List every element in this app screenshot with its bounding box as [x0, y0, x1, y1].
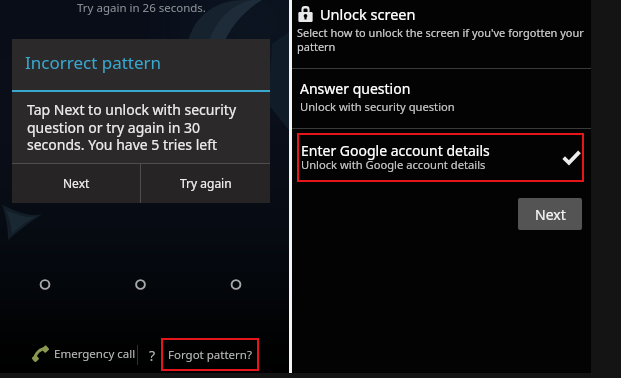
- other: Lock: [297, 6, 314, 23]
- staticText: Try again in 26 seconds.: [0, 0, 286, 16]
- staticText: Unlock with security question: [300, 99, 455, 114]
- staticText: Enter Google account details: [301, 141, 490, 160]
- button[interactable]: Forgot pattern?: [161, 338, 259, 371]
- button[interactable]: Next: [518, 198, 582, 230]
- button[interactable]: Emergency call: [32, 345, 136, 363]
- staticText: Try again: [180, 175, 232, 191]
- staticText: ?: [149, 346, 156, 365]
- staticText: Next: [63, 175, 90, 191]
- button[interactable]: Answer question: [292, 69, 591, 128]
- staticText: Forgot pattern?: [168, 347, 252, 363]
- staticText: Select how to unlock the screen if you'v…: [297, 25, 588, 54]
- button[interactable]: Next: [12, 163, 140, 203]
- staticText: Unlock screen: [320, 4, 416, 24]
- staticText: Next: [535, 205, 566, 224]
- button[interactable]: Enter Google account details: [297, 133, 584, 182]
- staticText: Unlock with Google account details: [301, 157, 486, 172]
- staticText: Emergency call: [54, 346, 136, 362]
- staticText: Incorrect pattern: [25, 51, 162, 74]
- button[interactable]: Try again: [141, 163, 270, 203]
- button[interactable]: Help: [144, 344, 160, 366]
- staticText: Answer question: [300, 79, 411, 98]
- staticText: Tap Next to unlock with security questio…: [27, 100, 245, 154]
